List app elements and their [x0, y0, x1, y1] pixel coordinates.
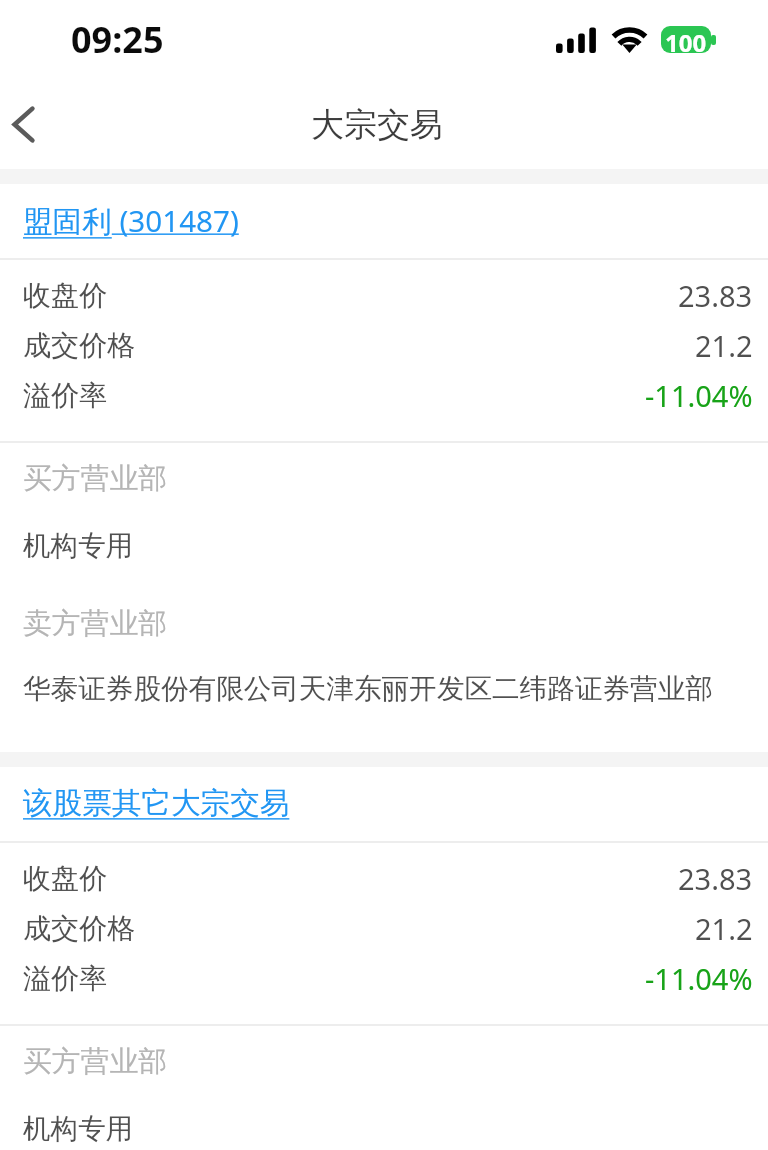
staticText: 买方营业部 — [23, 1043, 167, 1079]
staticText: 盟固利 (301487) — [23, 200, 239, 240]
staticText: 溢价率 — [23, 378, 107, 413]
button[interactable]: 盟固利 (301487) — [0, 184, 768, 258]
staticText: 21.2 — [695, 909, 753, 948]
staticText: 买方营业部 — [23, 460, 167, 496]
staticText: 卖方营业部 — [23, 605, 167, 641]
staticText: 大宗交易 — [311, 104, 443, 146]
staticText: 溢价率 — [23, 961, 107, 996]
button[interactable]: 溢价率 — [0, 953, 768, 1003]
staticText: -11.04% — [645, 959, 753, 998]
staticText: 华泰证券股份有限公司天津东丽开发区二纬路证券营业部 — [23, 671, 713, 706]
staticText: 成交价格 — [23, 328, 135, 363]
button[interactable]: 成交价格 — [0, 320, 768, 370]
staticText: 09:25 — [71, 15, 164, 64]
button[interactable]: Back — [0, 88, 46, 160]
staticText: 23.83 — [678, 859, 753, 898]
staticText: -11.04% — [645, 376, 753, 415]
staticText: 机构专用 — [23, 1111, 134, 1146]
button[interactable]: 买方营业部 — [0, 1026, 768, 1146]
button[interactable]: 溢价率 — [0, 370, 768, 420]
staticText: 成交价格 — [23, 911, 135, 946]
button[interactable]: 买方营业部 — [0, 443, 768, 752]
staticText: 收盘价 — [23, 861, 107, 896]
button[interactable]: 该股票其它大宗交易 — [0, 767, 768, 841]
button[interactable]: 成交价格 — [0, 903, 768, 953]
button[interactable]: 收盘价 — [0, 853, 768, 903]
button[interactable]: 收盘价 — [0, 270, 768, 320]
staticText: 21.2 — [695, 326, 753, 365]
staticText: 100 — [665, 26, 707, 53]
staticText: 该股票其它大宗交易 — [23, 784, 290, 821]
staticText: 收盘价 — [23, 278, 107, 313]
staticText: 23.83 — [678, 276, 753, 315]
staticText: 机构专用 — [23, 528, 134, 563]
